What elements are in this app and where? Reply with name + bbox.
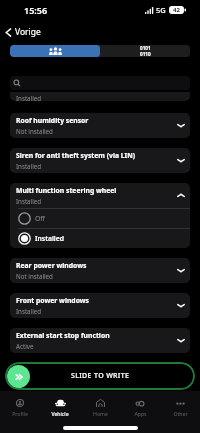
button[interactable]: Profile bbox=[0, 399, 40, 417]
staticText: Vehicle bbox=[51, 410, 69, 417]
button[interactable]: SLIDE TO WRITE bbox=[5, 362, 195, 390]
staticText: Multi function steering wheel bbox=[16, 186, 117, 195]
staticText: Front power windows bbox=[16, 296, 90, 305]
staticText: Rear power windows bbox=[16, 261, 87, 270]
other: Slide to write bbox=[7, 365, 30, 388]
button[interactable]: Roof humidity sensor bbox=[10, 113, 190, 138]
staticText: 42 bbox=[173, 6, 180, 14]
staticText: Off bbox=[35, 214, 45, 223]
button[interactable]: Home bbox=[80, 399, 120, 417]
staticText: 5G bbox=[156, 5, 166, 15]
staticText: Siren for anti theft system (via LIN) bbox=[16, 151, 136, 160]
staticText: External start stop function bbox=[16, 331, 110, 340]
button[interactable]: Vehicle bbox=[40, 399, 80, 417]
staticText: Other bbox=[173, 410, 188, 417]
button[interactable]: Binary data bbox=[100, 45, 190, 57]
button[interactable]: Siren for anti theft system (via LIN) bbox=[10, 148, 190, 173]
button[interactable]: Other bbox=[160, 399, 200, 417]
button[interactable]: People bbox=[10, 45, 100, 57]
button[interactable]: Apps bbox=[120, 399, 160, 417]
staticText: Not installed bbox=[16, 127, 53, 135]
button[interactable]: Installed bbox=[10, 92, 190, 101]
staticText: Installed bbox=[16, 307, 42, 315]
staticText: 0101 bbox=[140, 45, 151, 51]
staticText: Apps bbox=[134, 410, 147, 417]
staticText: Profile bbox=[12, 410, 28, 417]
button[interactable]: Vorige bbox=[0, 23, 49, 41]
button[interactable]: Multi function steering wheel bbox=[10, 183, 190, 208]
staticText: 0110 bbox=[140, 51, 151, 57]
button[interactable]: Search bbox=[10, 76, 190, 90]
staticText: Installed bbox=[16, 197, 42, 205]
staticText: SLIDE TO WRITE bbox=[71, 371, 130, 381]
staticText: Roof humidity sensor bbox=[16, 116, 89, 125]
staticText: Vorige bbox=[15, 26, 41, 38]
button[interactable]: Off bbox=[10, 209, 190, 228]
button[interactable]: External start stop function bbox=[10, 328, 190, 353]
staticText: Installed bbox=[16, 94, 42, 101]
staticText: Installed bbox=[35, 234, 65, 243]
button[interactable]: Installed bbox=[10, 229, 190, 248]
staticText: Installed bbox=[16, 162, 42, 170]
staticText: 15:56 bbox=[24, 4, 48, 16]
button[interactable]: Rear power windows bbox=[10, 258, 190, 283]
staticText: Home bbox=[93, 410, 108, 417]
staticText: Active bbox=[16, 342, 34, 350]
staticText: Not installed bbox=[16, 272, 53, 280]
button[interactable]: Front power windows bbox=[10, 293, 190, 318]
